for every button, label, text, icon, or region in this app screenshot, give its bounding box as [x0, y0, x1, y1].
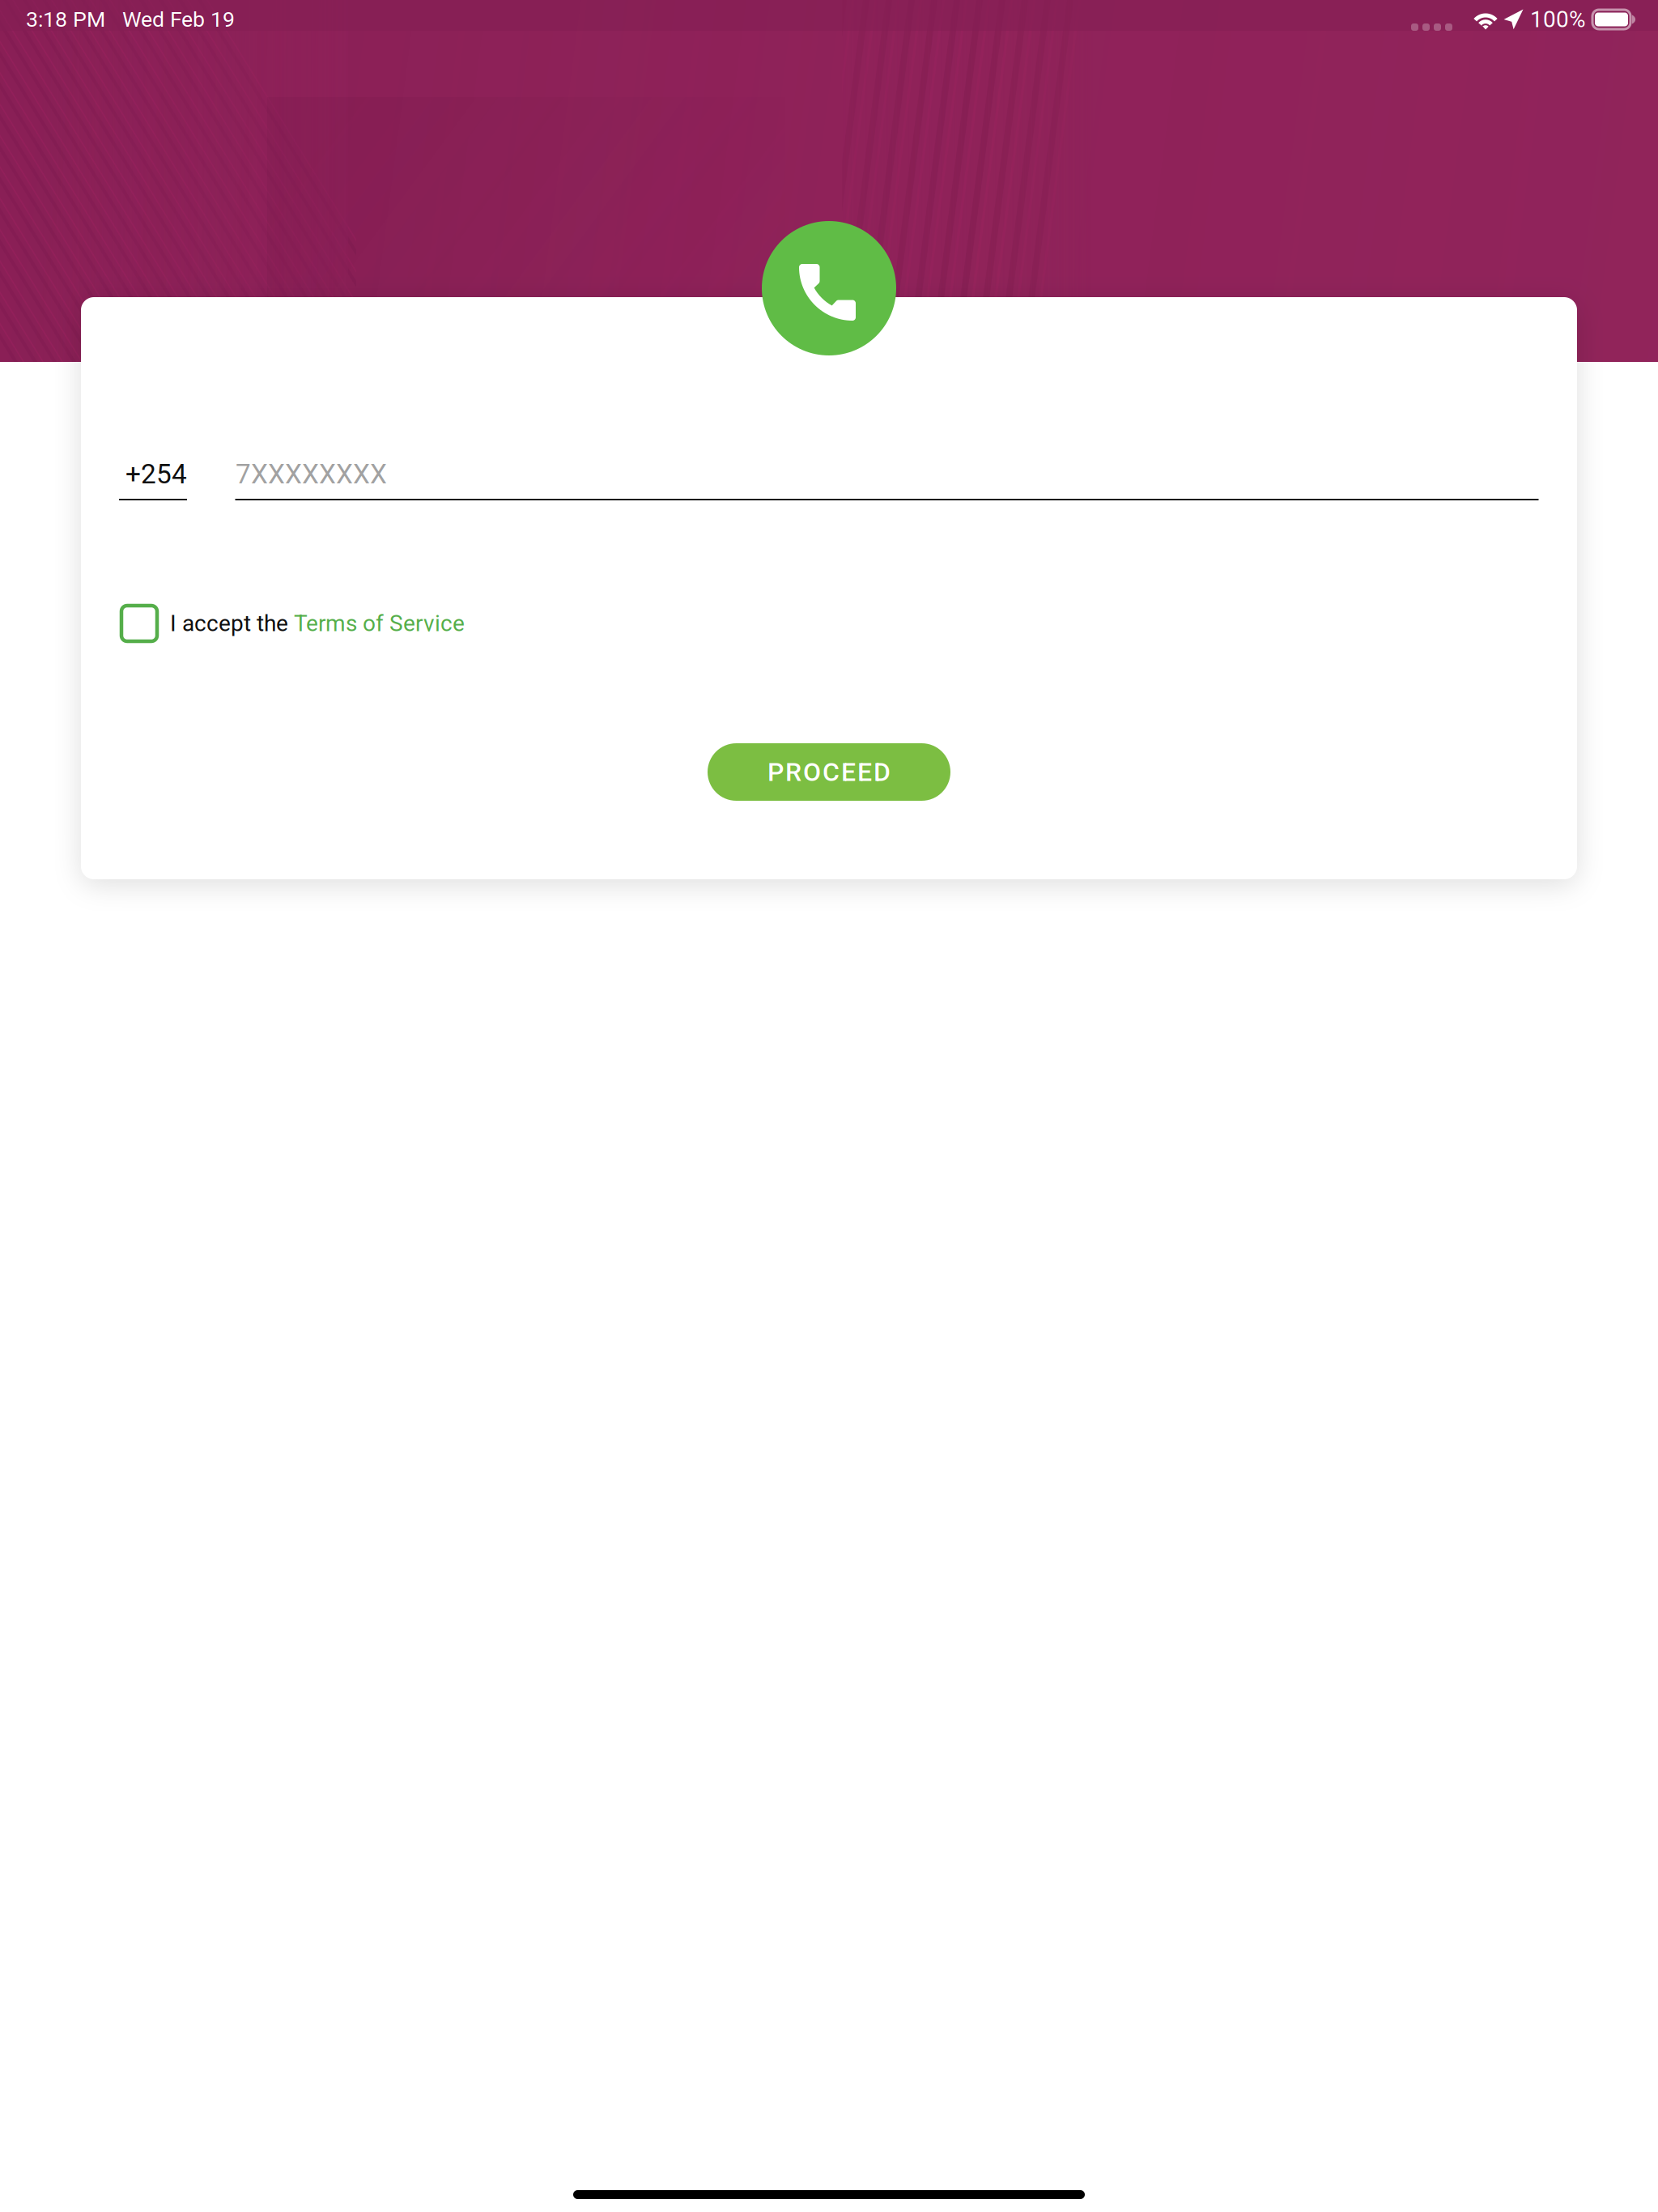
staticText: +254	[125, 458, 187, 490]
staticText: I accept the	[170, 610, 294, 637]
staticText: 7XXXXXXXX	[236, 458, 387, 490]
button[interactable]: +254	[119, 449, 187, 500]
staticText: 100%	[1530, 6, 1586, 33]
staticText: 3:18 PM	[26, 7, 105, 32]
button[interactable]: PROCEED	[708, 743, 950, 801]
staticText: Wed Feb 19	[105, 7, 235, 32]
button[interactable]: I accept the	[121, 606, 465, 641]
staticText: Terms of Service	[294, 610, 465, 637]
staticText: PROCEED	[767, 757, 891, 787]
button[interactable]: 7XXXXXXXX	[235, 449, 1539, 500]
